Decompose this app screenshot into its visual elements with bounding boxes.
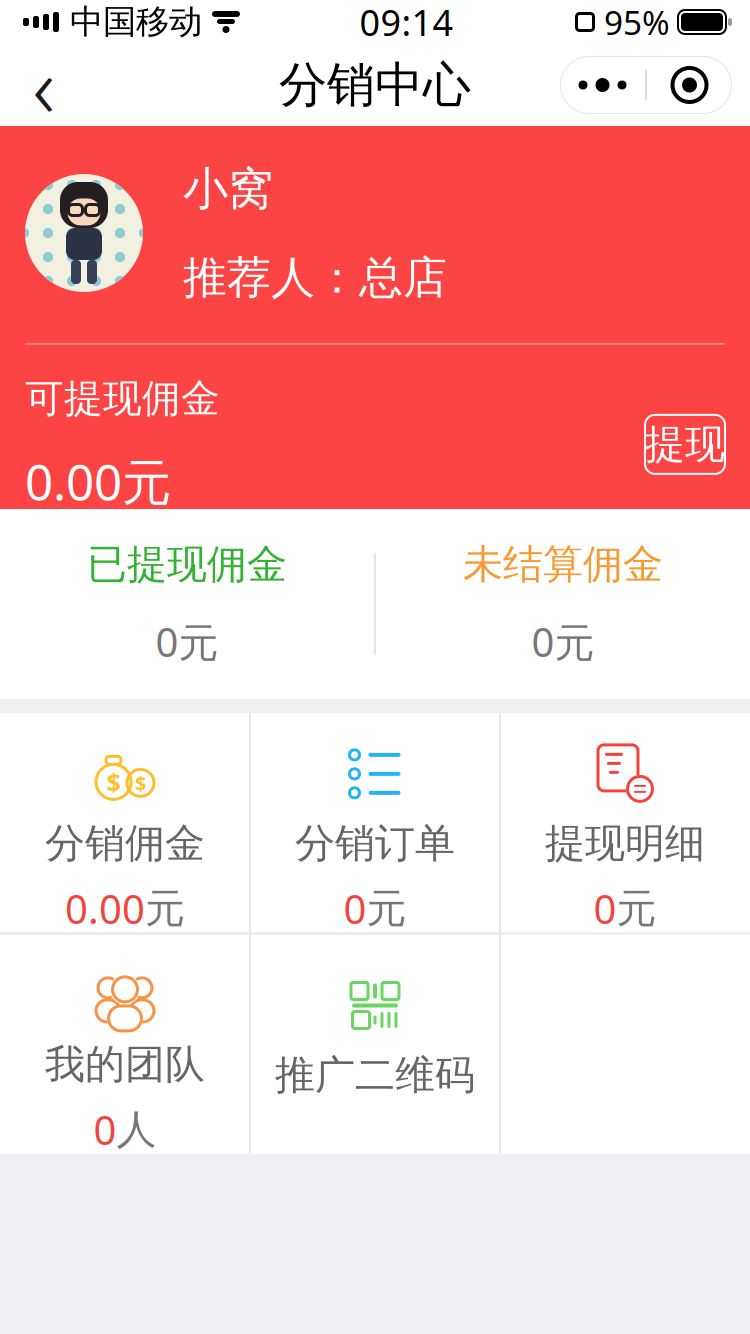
staticText: 可提现佣金: [25, 375, 220, 422]
button[interactable]: $: [1, 713, 249, 932]
staticText: 人: [116, 1105, 156, 1154]
staticText: 0.00: [65, 882, 145, 935]
staticText: 0.00元: [25, 448, 171, 514]
staticText: 我的团队: [45, 1040, 205, 1089]
staticText: 分销中心: [279, 55, 471, 114]
staticText: 元: [366, 884, 406, 933]
button[interactable]: 已提现佣金: [0, 509, 374, 699]
button[interactable]: 提现明细: [501, 713, 749, 932]
button[interactable]: 分销订单: [251, 713, 499, 932]
staticText: 元: [145, 884, 185, 933]
staticText: ‹: [32, 28, 55, 142]
staticText: 推荐人：总店: [183, 251, 447, 305]
staticText: 推广二维码: [275, 1050, 475, 1100]
staticText: 0: [93, 1103, 116, 1156]
staticText: 小窝: [183, 161, 273, 217]
staticText: 提现: [645, 420, 725, 469]
staticText: 分销佣金: [45, 819, 205, 868]
staticText: $: [135, 770, 146, 796]
staticText: 元: [616, 884, 656, 933]
staticText: 0元: [531, 615, 594, 668]
button[interactable]: 关闭: [647, 57, 732, 113]
button[interactable]: 推广二维码: [251, 934, 499, 1153]
staticText: 09:14: [359, 0, 453, 46]
button[interactable]: 提现: [645, 415, 725, 474]
staticText: 0: [343, 882, 366, 935]
button[interactable]: 返回: [6, 44, 82, 126]
staticText: 未结算佣金: [463, 540, 663, 589]
staticText: 0: [593, 882, 616, 935]
button[interactable]: 更多: [560, 57, 645, 113]
staticText: 0元: [155, 615, 218, 668]
staticText: 提现明细: [545, 819, 705, 868]
staticText: 已提现佣金: [87, 540, 287, 589]
staticText: 分销订单: [295, 819, 455, 868]
staticText: $: [106, 765, 120, 799]
staticText: 95%: [604, 0, 670, 44]
button[interactable]: 我的团队: [1, 934, 249, 1153]
staticText: 中国移动: [70, 1, 202, 42]
button[interactable]: 未结算佣金: [376, 509, 750, 699]
